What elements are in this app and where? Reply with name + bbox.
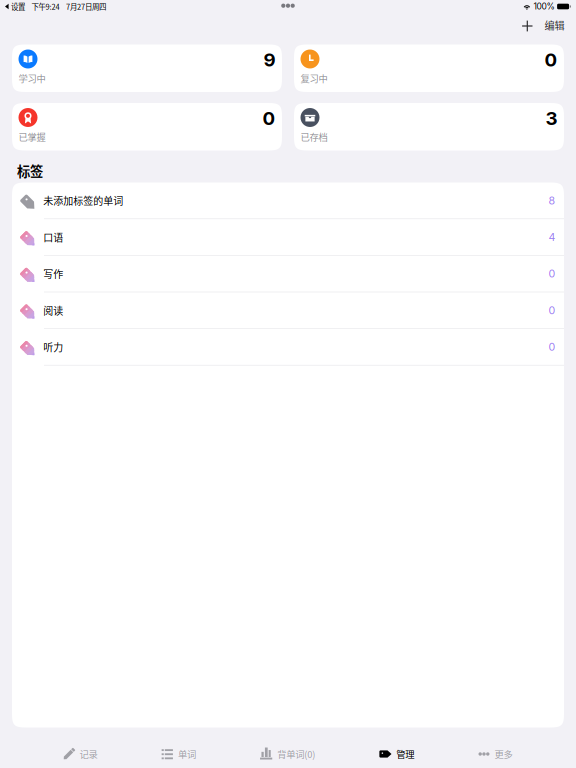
- button[interactable]: 添加: [513, 15, 541, 37]
- button[interactable]: 阅读: [12, 292, 564, 329]
- staticText: 9: [263, 48, 275, 71]
- button[interactable]: 学习中: [12, 44, 282, 92]
- button[interactable]: 编辑: [541, 13, 564, 39]
- staticText: 复习中: [300, 71, 327, 85]
- staticText: 0: [548, 267, 555, 280]
- staticText: 背单词(0): [277, 747, 315, 761]
- staticText: 已掌握: [18, 130, 45, 143]
- staticText: 3: [545, 107, 557, 130]
- staticText: 0: [544, 48, 557, 71]
- staticText: 已存档: [300, 130, 327, 143]
- staticText: 单词: [178, 747, 196, 761]
- staticText: 学习中: [18, 71, 45, 85]
- staticText: 记录: [79, 747, 97, 761]
- button[interactable]: 复习中: [294, 44, 564, 92]
- staticText: 0: [262, 107, 275, 130]
- button[interactable]: 已存档: [294, 103, 564, 150]
- button[interactable]: 管理: [379, 741, 415, 767]
- staticText: 100%: [533, 1, 554, 12]
- staticText: 8: [548, 194, 555, 207]
- staticText: 未添加标签的单词: [43, 193, 123, 208]
- staticText: 标签: [17, 161, 43, 180]
- staticText: 写作: [43, 266, 63, 281]
- button[interactable]: 单词: [161, 741, 196, 767]
- button[interactable]: 口语: [12, 219, 564, 256]
- staticText: 下午9:24: [31, 1, 59, 12]
- button[interactable]: 听力: [12, 329, 564, 365]
- staticText: 4: [548, 231, 555, 243]
- button[interactable]: 记录: [63, 741, 98, 767]
- staticText: 7月27日周四: [66, 1, 106, 12]
- button[interactable]: 未添加标签的单词: [12, 182, 564, 219]
- staticText: 编辑: [544, 18, 564, 32]
- staticText: 听力: [43, 340, 63, 354]
- staticText: 更多: [494, 747, 512, 761]
- button[interactable]: 写作: [12, 256, 564, 292]
- button[interactable]: 背单词(0): [259, 741, 316, 767]
- staticText: 0: [548, 304, 555, 317]
- button[interactable]: 已掌握: [12, 103, 282, 150]
- staticText: 设置: [11, 1, 25, 12]
- staticText: 阅读: [43, 303, 63, 318]
- staticText: 口语: [43, 230, 63, 244]
- button[interactable]: 更多: [478, 741, 513, 767]
- staticText: 管理: [396, 747, 414, 761]
- staticText: 0: [548, 340, 555, 353]
